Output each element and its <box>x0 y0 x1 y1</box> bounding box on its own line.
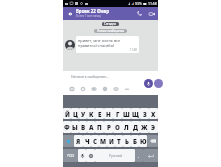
staticText: М <box>100 137 107 145</box>
staticText: 11:58 <box>148 1 157 6</box>
staticText: Н <box>106 110 111 118</box>
staticText: В <box>81 123 86 131</box>
staticText: Ц <box>73 110 78 118</box>
staticText: 93% <box>135 1 142 6</box>
button[interactable]: Change language <box>86 149 95 162</box>
staticText: Бровк 22 Февр <box>76 8 109 14</box>
staticText: Л <box>124 123 129 131</box>
staticText: С <box>93 137 98 145</box>
button[interactable]: И <box>107 135 115 147</box>
button[interactable]: Д <box>131 121 140 133</box>
staticText: Щ <box>132 110 139 118</box>
staticText: Х <box>151 110 156 118</box>
staticText: Ь <box>125 137 129 145</box>
staticText: Русский <box>109 153 122 158</box>
staticText: Й <box>65 110 70 118</box>
staticText: нравится) спасибо) <box>78 43 115 48</box>
button[interactable]: Numbers <box>63 149 78 162</box>
staticText: Ю <box>140 137 147 145</box>
staticText: Т <box>117 137 121 145</box>
staticText: П <box>97 123 102 131</box>
button[interactable]: В <box>79 121 87 133</box>
button[interactable]: З <box>140 108 149 119</box>
button[interactable]: привет, мне очень все <box>76 36 139 53</box>
button[interactable]: Ф <box>63 121 71 133</box>
staticText: Я <box>76 137 81 145</box>
button[interactable]: Е <box>95 108 104 119</box>
button[interactable]: М <box>99 135 107 147</box>
button[interactable]: Ц <box>71 108 79 119</box>
staticText: привет, мне очень все <box>78 38 121 43</box>
button[interactable]: О <box>113 121 122 133</box>
button[interactable]: Enter <box>143 149 158 162</box>
staticText: Э <box>151 123 156 131</box>
button[interactable]: Voice call <box>133 7 145 20</box>
staticText: ?123 <box>67 154 74 158</box>
button[interactable]: Щ <box>131 108 140 119</box>
button[interactable]: Новые сообщения <box>97 29 124 33</box>
button[interactable]: Gallery <box>113 86 118 91</box>
button[interactable]: Camera <box>91 86 96 91</box>
staticText: К <box>89 110 94 118</box>
staticText: Е <box>98 110 102 118</box>
staticText: Д <box>133 123 138 131</box>
staticText: Сегодня <box>104 22 117 26</box>
button[interactable]: К <box>87 108 95 119</box>
button[interactable]: More <box>124 86 129 91</box>
staticText: А <box>89 123 94 131</box>
staticText: Ч <box>85 137 90 145</box>
staticText: О <box>115 123 120 131</box>
button[interactable]: Э <box>149 121 158 133</box>
button[interactable]: Video call <box>145 7 158 20</box>
staticText: Ы <box>72 123 78 131</box>
button[interactable]: Р <box>104 121 113 133</box>
button[interactable]: Т <box>115 135 123 147</box>
staticText: З <box>143 110 147 118</box>
button[interactable]: Н <box>104 108 113 119</box>
staticText: Р <box>107 123 111 131</box>
button[interactable]: Emoji <box>102 86 107 91</box>
button[interactable]: Б <box>131 135 139 147</box>
staticText: 11:48 <box>130 48 137 52</box>
staticText: И <box>109 137 114 145</box>
staticText: Написать сообщение... <box>71 74 109 79</box>
staticText: . <box>138 153 140 159</box>
button[interactable]: Send image <box>69 86 74 91</box>
button[interactable]: Ь <box>123 135 131 147</box>
button[interactable]: Я <box>74 135 83 147</box>
staticText: У <box>81 110 86 118</box>
button[interactable]: Ы <box>71 121 79 133</box>
staticText: Ш <box>123 110 130 118</box>
button[interactable]: Х <box>149 108 158 119</box>
button[interactable]: Stickers <box>80 86 85 91</box>
staticText: Новые сообщения <box>97 29 124 33</box>
button[interactable]: Л <box>122 121 131 133</box>
button[interactable]: У <box>79 108 87 119</box>
button[interactable]: А <box>87 121 95 133</box>
button[interactable]: Ю <box>139 135 147 147</box>
button[interactable]: Voice input <box>78 149 86 162</box>
button[interactable]: Space <box>95 149 135 162</box>
staticText: Б <box>133 137 138 145</box>
button[interactable]: П <box>95 121 104 133</box>
staticText: В сети 7 мин назад <box>76 14 101 18</box>
staticText: Ж <box>141 123 148 131</box>
button[interactable]: Backspace <box>147 135 158 147</box>
staticText: Ф <box>64 123 70 131</box>
button[interactable]: Ж <box>140 121 149 133</box>
button[interactable]: Record voice message <box>144 79 153 88</box>
button[interactable]: Period <box>135 149 143 162</box>
button[interactable]: Back <box>63 7 76 20</box>
button[interactable]: Й <box>63 108 71 119</box>
button[interactable]: Shift <box>63 135 74 147</box>
button[interactable]: Ш <box>122 108 131 119</box>
button[interactable]: Сегодня <box>104 22 117 26</box>
button[interactable]: Ч <box>83 135 91 147</box>
button[interactable]: Г <box>113 108 122 119</box>
button[interactable]: С <box>91 135 99 147</box>
staticText: Г <box>116 110 120 118</box>
